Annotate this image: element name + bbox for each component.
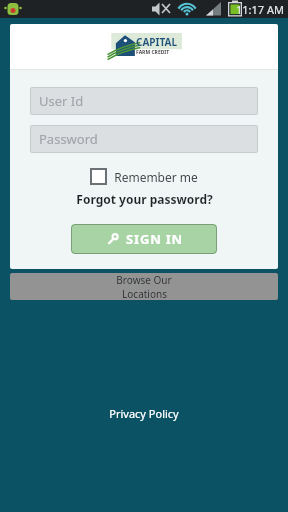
staticText: SIGN IN — [126, 230, 183, 248]
button[interactable]: Forgot your password? — [72, 189, 217, 209]
button[interactable]: Password — [30, 125, 258, 153]
staticText: Browse Our — [116, 273, 172, 287]
staticText: 11:17 AM — [236, 2, 284, 17]
button[interactable]: Remember me — [88, 166, 200, 187]
button[interactable]: Browse Our — [10, 273, 278, 300]
button[interactable]: User Id — [30, 87, 258, 115]
staticText: Forgot your password? — [76, 191, 213, 207]
staticText: Privacy Policy — [109, 406, 179, 421]
staticText: FARM CREDIT — [136, 49, 170, 56]
staticText: Locations — [122, 287, 167, 300]
staticText: Remember me — [114, 169, 198, 185]
staticText: CAPITAL — [136, 35, 178, 49]
staticText: User Id — [39, 92, 84, 110]
button[interactable]: SIGN IN — [71, 224, 217, 254]
staticText: Password — [39, 130, 98, 148]
button[interactable]: Privacy Policy — [99, 401, 189, 426]
